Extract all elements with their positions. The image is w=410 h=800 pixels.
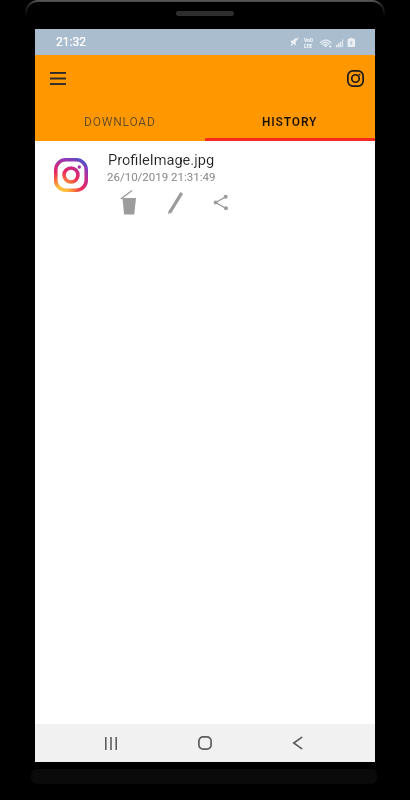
button[interactable]: DOWNLOAD <box>35 101 205 138</box>
staticText: 26/10/2019 21:31:49 <box>107 170 216 183</box>
button[interactable]: Recents <box>96 728 126 758</box>
button[interactable]: Back <box>282 728 312 758</box>
staticText: DOWNLOAD <box>84 115 156 129</box>
staticText: LTE <box>304 43 313 49</box>
staticText: HISTORY <box>262 115 318 129</box>
staticText: Vo0 <box>304 37 313 43</box>
button[interactable]: HISTORY <box>205 101 375 138</box>
button[interactable]: Delete <box>112 187 142 217</box>
button[interactable]: Edit <box>159 187 189 217</box>
button[interactable]: Share <box>205 187 235 217</box>
button[interactable]: Open Instagram <box>339 62 371 94</box>
button[interactable]: Menu <box>42 62 74 94</box>
button[interactable]: ProfileImage.jpg <box>35 141 375 221</box>
staticText: 21:32 <box>56 35 86 49</box>
button[interactable]: Home <box>190 728 220 758</box>
staticText: ProfileImage.jpg <box>108 151 215 168</box>
